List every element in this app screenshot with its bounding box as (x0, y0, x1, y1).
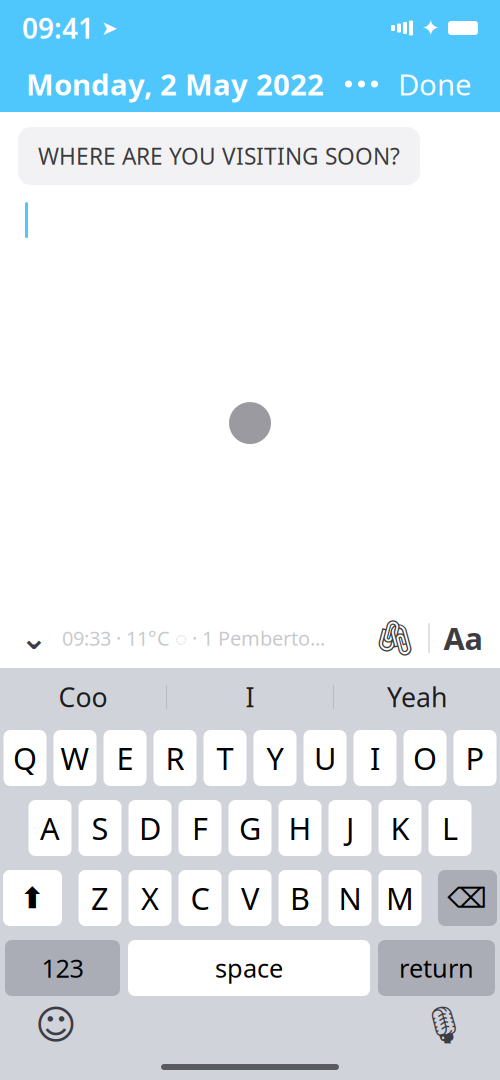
staticText: ⬆ (20, 881, 45, 915)
staticText: I (245, 679, 254, 715)
button[interactable]: ⬆ (3, 870, 62, 926)
button[interactable]: Collapse (12, 616, 56, 660)
button[interactable]: A (28, 800, 71, 856)
staticText: ✦ (421, 15, 440, 41)
button[interactable]: G (228, 800, 271, 856)
staticText: B (290, 878, 310, 918)
staticText: S (91, 808, 108, 848)
staticText: Coo (58, 679, 107, 715)
button[interactable]: R (153, 730, 196, 786)
staticText: J (346, 808, 354, 848)
button[interactable]: K (378, 800, 421, 856)
button[interactable]: D (128, 800, 171, 856)
staticText: D (139, 808, 161, 848)
staticText: 🖇 (373, 618, 417, 658)
button[interactable]: Q (3, 730, 46, 786)
staticText: Y (266, 738, 283, 778)
staticText: 123 (41, 951, 83, 985)
button[interactable]: B (278, 870, 321, 926)
staticText: G (239, 808, 261, 848)
button[interactable]: N (328, 870, 371, 926)
button[interactable]: O (403, 730, 446, 786)
staticText: Yeah (387, 679, 447, 715)
staticText: Q (13, 738, 37, 778)
button[interactable]: U (303, 730, 346, 786)
staticText: F (192, 808, 208, 848)
button[interactable]: ⌫ (438, 870, 497, 926)
staticText: ⌫ (447, 882, 487, 914)
button[interactable]: M (378, 870, 421, 926)
button[interactable]: Z (78, 870, 121, 926)
button[interactable]: space (128, 940, 370, 996)
button[interactable]: F (178, 800, 221, 856)
button[interactable]: Y (253, 730, 296, 786)
staticText: V (241, 878, 259, 918)
staticText: 09:33 · 11°C ◌ · 1 Pemberto... (62, 625, 325, 651)
button[interactable]: I (353, 730, 396, 786)
button[interactable]: More options (335, 66, 388, 101)
staticText: return (399, 951, 474, 985)
staticText: K (390, 808, 409, 848)
staticText: T (216, 738, 233, 778)
button[interactable]: Emoji (30, 999, 82, 1051)
button[interactable]: S (78, 800, 121, 856)
button[interactable]: 123 (5, 940, 120, 996)
staticText: A (40, 808, 60, 848)
button[interactable]: Coo (0, 668, 166, 726)
staticText: WHERE ARE YOU VISITING SOON? (38, 141, 400, 171)
button[interactable]: W (53, 730, 96, 786)
button[interactable]: T (203, 730, 246, 786)
staticText: N (338, 878, 361, 918)
staticText: C (190, 878, 209, 918)
button[interactable]: Yeah (334, 668, 500, 726)
staticText: ➤ (94, 17, 118, 39)
button[interactable]: J (328, 800, 371, 856)
staticText: Done (398, 64, 472, 103)
button[interactable]: return (378, 940, 495, 996)
staticText: H (288, 808, 311, 848)
staticText: 🎙 (421, 1004, 467, 1045)
button[interactable]: X (128, 870, 171, 926)
button[interactable]: I (167, 668, 333, 726)
button[interactable]: C (178, 870, 221, 926)
button[interactable]: V (228, 870, 271, 926)
button[interactable]: Dictation (418, 999, 470, 1051)
staticText: U (314, 738, 336, 778)
staticText: 09:41 (22, 9, 94, 47)
staticText: Z (91, 878, 109, 918)
button[interactable]: Text formatting (440, 615, 486, 661)
staticText: O (413, 738, 437, 778)
staticText: L (442, 808, 458, 848)
staticText: R (165, 738, 184, 778)
button[interactable]: P (453, 730, 496, 786)
staticText: I (370, 738, 380, 778)
staticText: Aa (443, 618, 482, 658)
button[interactable]: Attach (372, 615, 418, 661)
button[interactable]: E (103, 730, 146, 786)
staticText: P (465, 738, 484, 778)
staticText: M (386, 878, 414, 918)
staticText: X (141, 878, 159, 918)
staticText: W (60, 738, 89, 778)
staticText: ⌄ (20, 620, 47, 656)
button[interactable]: Done (388, 56, 482, 111)
staticText: E (116, 738, 133, 778)
staticText: ☺ (35, 1002, 77, 1048)
staticText: Monday, 2 May 2022 (26, 64, 324, 103)
button[interactable]: H (278, 800, 321, 856)
staticText: space (215, 951, 283, 985)
button[interactable]: L (428, 800, 471, 856)
